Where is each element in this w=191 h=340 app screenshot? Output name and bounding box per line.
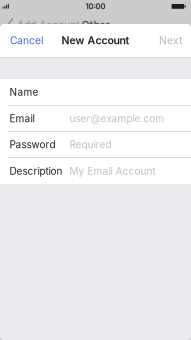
staticText: user@example.com — [69, 112, 164, 125]
button[interactable]: Name — [0, 79, 191, 106]
button[interactable]: Description — [0, 158, 191, 184]
staticText: 10:00 — [85, 2, 105, 11]
staticText: Description — [9, 165, 62, 177]
button[interactable]: Email — [0, 106, 191, 132]
staticText: Cancel — [10, 34, 43, 47]
button[interactable]: Password — [0, 132, 191, 158]
staticText: My Email Account — [69, 165, 155, 177]
staticText: Name — [9, 86, 38, 98]
staticText: Email — [9, 112, 34, 125]
staticText: Required — [69, 138, 111, 151]
staticText: Next — [159, 34, 182, 47]
button[interactable]: Cancel — [0, 24, 51, 57]
button[interactable]: Next — [151, 24, 191, 57]
button[interactable]: Add Account — [0, 18, 79, 32]
staticText: Password — [9, 138, 55, 151]
staticText: New Account — [61, 34, 129, 47]
staticText: Other — [81, 19, 109, 31]
staticText: Add Account — [17, 19, 79, 31]
